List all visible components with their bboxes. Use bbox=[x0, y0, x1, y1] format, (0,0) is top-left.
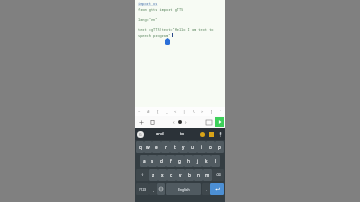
button[interactable]: Change language bbox=[157, 183, 165, 195]
button[interactable]: English bbox=[166, 183, 201, 195]
button[interactable]: ~ bbox=[135, 107, 144, 116]
button[interactable]: Assistant bbox=[137, 131, 144, 138]
staticText: d bbox=[160, 158, 163, 164]
button[interactable]: g bbox=[175, 155, 184, 167]
button[interactable]: h bbox=[184, 155, 193, 167]
button[interactable]: v bbox=[176, 169, 185, 181]
staticText: r bbox=[165, 144, 167, 150]
button[interactable]: > bbox=[198, 107, 207, 116]
staticText: c bbox=[170, 172, 173, 178]
button[interactable]: l bbox=[211, 155, 220, 167]
button[interactable]: Shift bbox=[136, 169, 149, 181]
button[interactable]: import os bbox=[135, 0, 225, 107]
button[interactable]: # bbox=[144, 107, 153, 116]
button[interactable]: Copy bbox=[148, 118, 156, 126]
button[interactable]: _ bbox=[162, 107, 171, 116]
button[interactable]: ] bbox=[207, 107, 216, 116]
staticText: and bbox=[156, 131, 164, 137]
staticText: from gtts import gTTS bbox=[138, 7, 184, 12]
button[interactable]: Enter bbox=[210, 183, 224, 195]
staticText: y bbox=[182, 144, 185, 150]
staticText: ] bbox=[211, 109, 213, 114]
staticText: h bbox=[187, 158, 190, 164]
button[interactable]: a bbox=[140, 155, 148, 167]
button[interactable]: m bbox=[203, 169, 212, 181]
button[interactable]: Symbols bbox=[136, 183, 149, 195]
button[interactable]: j bbox=[193, 155, 202, 167]
button[interactable]: w bbox=[144, 141, 152, 153]
staticText: ⇧ bbox=[141, 173, 144, 177]
button[interactable]: Backspace bbox=[212, 169, 224, 181]
staticText: G bbox=[139, 132, 142, 137]
staticText: n bbox=[197, 172, 200, 178]
button[interactable]: x bbox=[158, 169, 167, 181]
staticText: s bbox=[151, 158, 154, 164]
button[interactable]: k bbox=[202, 155, 211, 167]
staticText: u bbox=[191, 144, 194, 150]
staticText: ~ bbox=[138, 109, 141, 114]
button[interactable]: | bbox=[180, 107, 189, 116]
button[interactable]: Sticker bbox=[208, 131, 215, 138]
staticText: b bbox=[188, 172, 191, 178]
staticText: ?123 bbox=[139, 187, 147, 192]
button[interactable]: b bbox=[185, 169, 194, 181]
staticText: a bbox=[143, 158, 146, 164]
staticText: q bbox=[139, 144, 142, 150]
staticText: t bbox=[174, 144, 176, 150]
button[interactable]: Period bbox=[202, 183, 210, 195]
button[interactable]: Voice input bbox=[217, 131, 224, 138]
staticText: ` bbox=[220, 109, 222, 114]
button[interactable]: e bbox=[152, 141, 161, 153]
staticText: _ bbox=[166, 109, 168, 114]
staticText: o bbox=[209, 144, 212, 150]
button[interactable]: Hide keyboard bbox=[205, 118, 213, 126]
button[interactable]: p bbox=[215, 141, 224, 153]
staticText: lang="en" bbox=[138, 17, 158, 22]
button[interactable]: [ bbox=[153, 107, 162, 116]
button[interactable]: and bbox=[149, 128, 171, 140]
button[interactable]: to bbox=[171, 128, 193, 140]
staticText: , bbox=[153, 187, 154, 192]
staticText: e bbox=[155, 144, 158, 150]
button[interactable]: < bbox=[171, 107, 180, 116]
staticText: f bbox=[170, 158, 172, 164]
button[interactable]: i bbox=[197, 141, 206, 153]
button[interactable]: Emoji bbox=[199, 131, 206, 138]
staticText: l bbox=[215, 158, 217, 164]
staticText: to bbox=[180, 131, 185, 137]
button[interactable]: q bbox=[136, 141, 144, 153]
button[interactable]: u bbox=[188, 141, 197, 153]
button[interactable]: d bbox=[157, 155, 166, 167]
button[interactable]: \ bbox=[189, 107, 198, 116]
staticText: \ bbox=[193, 109, 195, 114]
button[interactable]: y bbox=[179, 141, 188, 153]
button[interactable]: o bbox=[206, 141, 215, 153]
button[interactable]: n bbox=[194, 169, 203, 181]
staticText: k bbox=[205, 158, 208, 164]
staticText: z bbox=[152, 172, 155, 178]
staticText: > bbox=[201, 109, 204, 114]
staticText: i bbox=[201, 144, 203, 150]
staticText: p bbox=[218, 144, 221, 150]
button[interactable]: z bbox=[149, 169, 158, 181]
staticText: m bbox=[205, 172, 210, 178]
staticText: v bbox=[179, 172, 182, 178]
button[interactable]: t bbox=[170, 141, 179, 153]
staticText: text =gTTS(text="Hello I am text to bbox=[138, 27, 214, 32]
button[interactable]: Move cursor bbox=[137, 118, 145, 126]
button[interactable]: Comma bbox=[149, 183, 157, 195]
staticText: speech program" bbox=[138, 33, 171, 38]
staticText: English bbox=[178, 187, 190, 192]
button[interactable]: Record bbox=[178, 120, 182, 124]
button[interactable]: Run bbox=[215, 117, 224, 127]
staticText: [ bbox=[157, 109, 159, 114]
staticText: < bbox=[174, 109, 177, 114]
button[interactable]: c bbox=[167, 169, 176, 181]
button[interactable]: f bbox=[166, 155, 175, 167]
staticText: x bbox=[161, 172, 164, 178]
staticText: j bbox=[197, 158, 199, 164]
button[interactable]: s bbox=[148, 155, 157, 167]
button[interactable]: r bbox=[161, 141, 170, 153]
staticText: › bbox=[185, 119, 187, 126]
